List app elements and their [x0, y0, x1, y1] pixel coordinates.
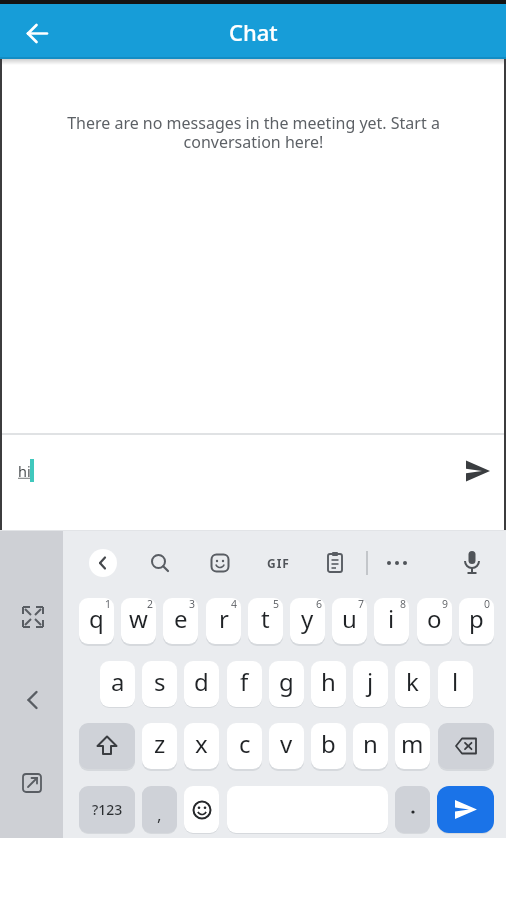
button[interactable]: e [163, 598, 198, 644]
staticText: v [280, 727, 293, 760]
staticText: f [240, 665, 249, 698]
button[interactable] [438, 723, 494, 769]
button[interactable]: y [290, 598, 325, 644]
button[interactable]: , [142, 786, 177, 833]
button[interactable]: w [121, 598, 156, 644]
button[interactable] [25, 21, 51, 47]
button[interactable]: d [184, 661, 219, 707]
staticText: l [452, 665, 459, 698]
staticText: 4 [231, 597, 238, 611]
button[interactable]: z [142, 723, 177, 769]
button[interactable] [461, 549, 483, 577]
button[interactable]: ?123 [79, 786, 135, 833]
staticText: s [154, 665, 166, 698]
staticText: 0 [484, 597, 491, 611]
staticText: d [194, 665, 209, 698]
staticText: x [195, 727, 208, 760]
button[interactable]: a [100, 661, 135, 707]
button[interactable] [184, 786, 219, 833]
staticText: j [367, 665, 374, 698]
button[interactable]: h [311, 661, 346, 707]
staticText: 8 [400, 597, 407, 611]
button[interactable]: t [248, 598, 283, 644]
staticText: There are no messages in the meeting yet… [67, 112, 440, 153]
staticText: k [406, 665, 419, 698]
button[interactable] [149, 552, 171, 574]
staticText: i [388, 602, 395, 635]
staticText: 9 [442, 597, 449, 611]
button[interactable] [22, 771, 44, 793]
staticText: m [401, 727, 424, 760]
staticText: n [363, 727, 378, 760]
staticText: b [321, 727, 336, 760]
staticText: o [427, 602, 442, 635]
staticText: , [157, 803, 162, 826]
button[interactable]: v [269, 723, 304, 769]
staticText: e [174, 602, 188, 635]
button[interactable] [324, 551, 346, 575]
staticText: 1 [105, 597, 112, 611]
button[interactable]: m [395, 723, 430, 769]
staticText: w [129, 602, 148, 635]
button[interactable]: l [438, 661, 473, 707]
button[interactable]: k [395, 661, 430, 707]
button[interactable]: u [332, 598, 367, 644]
button[interactable]: b [311, 723, 346, 769]
staticText: ?123 [92, 800, 123, 819]
staticText: q [89, 602, 104, 635]
button[interactable] [384, 556, 410, 570]
button[interactable] [23, 690, 43, 710]
staticText: 7 [358, 597, 365, 611]
staticText: y [301, 602, 314, 635]
button[interactable] [395, 786, 430, 833]
button[interactable]: f [227, 661, 262, 707]
button[interactable]: p [459, 598, 494, 644]
staticText: z [154, 727, 166, 760]
button[interactable]: s [142, 661, 177, 707]
staticText: p [469, 602, 484, 635]
staticText: 2 [147, 597, 154, 611]
staticText: Chat [229, 17, 278, 47]
staticText: 6 [316, 597, 323, 611]
button[interactable]: j [353, 661, 388, 707]
staticText: t [261, 602, 270, 635]
staticText: u [342, 602, 357, 635]
staticText: 5 [273, 597, 280, 611]
staticText: h [321, 665, 336, 698]
staticText: GIF [267, 555, 290, 571]
staticText: hi [18, 461, 31, 481]
staticText: r [219, 602, 229, 635]
button[interactable] [209, 552, 231, 574]
button[interactable]: q [79, 598, 114, 644]
button[interactable]: r [206, 598, 241, 644]
staticText: a [111, 665, 125, 698]
button[interactable]: o [417, 598, 452, 644]
button[interactable]: GIF [262, 552, 294, 574]
button[interactable] [89, 549, 117, 577]
staticText: c [239, 727, 251, 760]
button[interactable] [79, 723, 135, 769]
button[interactable]: n [353, 723, 388, 769]
button[interactable] [21, 605, 45, 629]
button[interactable]: i [374, 598, 409, 644]
button[interactable]: x [184, 723, 219, 769]
button[interactable]: g [269, 661, 304, 707]
button[interactable]: c [227, 723, 262, 769]
button[interactable] [437, 786, 494, 833]
staticText: g [279, 665, 294, 698]
button[interactable] [463, 457, 493, 485]
staticText: 3 [189, 597, 196, 611]
